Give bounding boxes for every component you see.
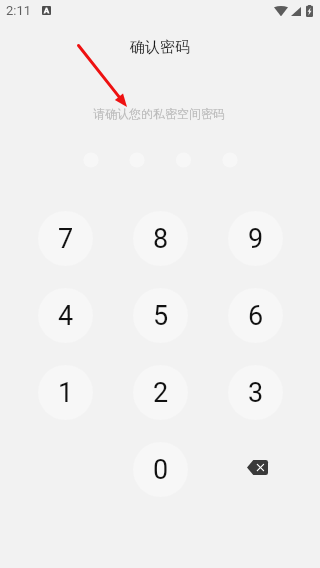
staticText: 7 — [58, 223, 74, 255]
button[interactable]: 4 — [38, 288, 93, 343]
staticText: 确认密码 — [130, 38, 190, 57]
button[interactable]: 9 — [228, 211, 283, 266]
staticText: 3 — [248, 377, 264, 409]
staticText: 请确认您的私密空间密码 — [93, 106, 225, 121]
button[interactable]: 5 — [133, 288, 188, 343]
staticText: 2 — [153, 377, 169, 409]
staticText: 4 — [58, 300, 74, 332]
button[interactable]: 3 — [228, 365, 283, 420]
staticText: 9 — [248, 223, 264, 255]
button[interactable]: 6 — [228, 288, 283, 343]
button[interactable]: 0 — [133, 442, 188, 497]
button[interactable]: 7 — [38, 211, 93, 266]
button[interactable]: 8 — [133, 211, 188, 266]
staticText: 2:11 — [6, 3, 32, 18]
button[interactable]: 1 — [38, 365, 93, 420]
staticText: 6 — [248, 300, 264, 332]
staticText: 5 — [153, 300, 169, 332]
button[interactable]: 2 — [133, 365, 188, 420]
staticText: 1 — [58, 377, 74, 409]
staticText: 8 — [153, 223, 169, 255]
button[interactable]: Backspace — [228, 442, 283, 497]
staticText: 0 — [153, 454, 169, 486]
